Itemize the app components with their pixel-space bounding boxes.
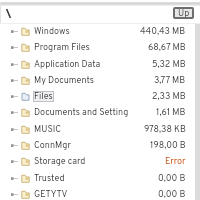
button[interactable]: Path (0, 2, 200, 24)
staticText: 5,32 MB (152, 59, 186, 70)
staticText: Trusted (34, 173, 65, 184)
staticText: 978,38 KB (144, 124, 186, 135)
button[interactable]: Program Files (0, 39, 200, 55)
button[interactable]: My Documents (0, 72, 200, 88)
staticText: 198,00 B (150, 140, 186, 151)
staticText: Application Data (34, 59, 101, 70)
staticText: GETYTV (34, 189, 68, 200)
button[interactable]: Trusted (0, 170, 200, 186)
staticText: 68,67 MB (148, 42, 186, 53)
staticText: Windows (34, 26, 70, 37)
staticText: My Documents (34, 75, 95, 86)
button[interactable]: Storage card (0, 153, 200, 169)
button[interactable]: Windows (0, 23, 200, 39)
staticText: 440,43 MB (140, 26, 186, 37)
staticText: Storage card (34, 156, 86, 167)
staticText: 3,77 MB (154, 75, 186, 86)
staticText: 2,33 MB (152, 91, 186, 102)
button[interactable]: Application Data (0, 56, 200, 72)
staticText: Documents and Setting (34, 107, 129, 118)
staticText: MUSIC (34, 124, 62, 135)
button[interactable]: Up (173, 7, 194, 19)
staticText: Error (165, 156, 186, 167)
other: Path (6, 9, 11, 18)
staticText: 0,00 B (158, 173, 186, 184)
staticText: Files (34, 91, 53, 102)
staticText: ConnMgr (34, 140, 71, 151)
button[interactable]: Documents and Setting (0, 104, 200, 120)
staticText: 0,00 B (158, 189, 186, 200)
staticText: Up (178, 8, 190, 19)
button[interactable]: GETYTV (0, 186, 200, 200)
staticText: 1,61 MB (156, 107, 186, 118)
button[interactable]: ConnMgr (0, 137, 200, 153)
staticText: Program Files (34, 42, 90, 53)
button[interactable]: MUSIC (0, 121, 200, 137)
button[interactable]: Files (0, 88, 200, 104)
